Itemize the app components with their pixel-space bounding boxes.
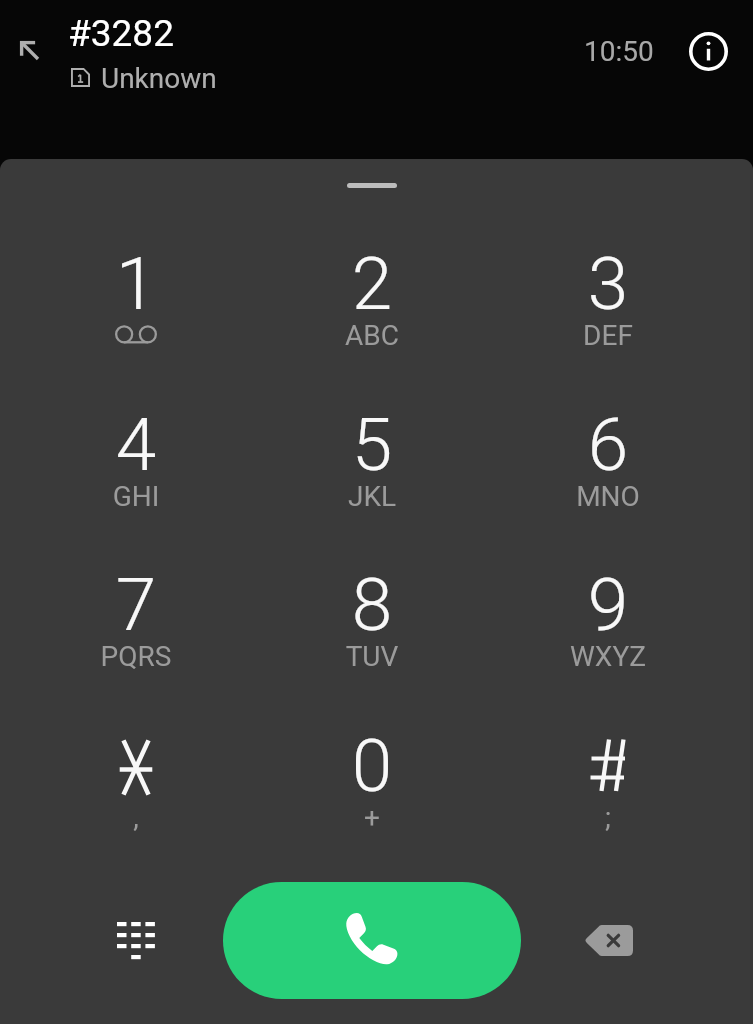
staticText: Unknown <box>101 62 217 95</box>
button[interactable]: Dial 8 <box>264 528 480 680</box>
staticText: 10:50 <box>584 35 654 68</box>
button[interactable]: Delete <box>568 900 648 980</box>
staticText: JKL <box>267 480 477 513</box>
staticText: DEF <box>503 319 713 352</box>
staticText: ABC <box>267 319 477 352</box>
button[interactable]: Dial # <box>500 689 716 841</box>
staticText: PQRS <box>31 640 241 673</box>
staticText: 9 <box>503 562 713 648</box>
button[interactable]: Dial 1 <box>28 207 244 359</box>
button[interactable]: Dial 9 <box>500 528 716 680</box>
staticText: 3 <box>503 241 713 327</box>
button[interactable]: Dial 7 <box>28 528 244 680</box>
button[interactable]: Dial 2 <box>264 207 480 359</box>
button[interactable]: Dial 0 <box>264 689 480 841</box>
staticText: 0 <box>267 723 477 809</box>
button[interactable]: Dial 5 <box>264 368 480 520</box>
button[interactable]: Keypad <box>96 900 176 980</box>
staticText: 4 <box>31 402 241 488</box>
button[interactable]: Call details <box>680 23 736 79</box>
button[interactable]: Call <box>223 882 521 999</box>
staticText: 2 <box>267 241 477 327</box>
button[interactable]: Dial * <box>28 689 244 841</box>
staticText: WXYZ <box>503 640 713 673</box>
button[interactable]: Dial 6 <box>500 368 716 520</box>
staticText: 8 <box>267 562 477 648</box>
staticText: MNO <box>503 480 713 513</box>
staticText: 1 <box>31 241 241 327</box>
staticText: GHI <box>31 480 241 513</box>
button[interactable]: Dial 4 <box>28 368 244 520</box>
staticText: 5 <box>267 402 477 488</box>
button[interactable]: Back <box>1 22 57 78</box>
staticText: 6 <box>503 402 713 488</box>
staticText: , <box>31 801 241 834</box>
staticText: TUV <box>267 640 477 673</box>
button[interactable]: Dial 3 <box>500 207 716 359</box>
staticText: #3282 <box>68 12 174 55</box>
staticText: ; <box>503 801 713 834</box>
staticText: + <box>267 801 477 834</box>
staticText: 7 <box>31 562 241 648</box>
